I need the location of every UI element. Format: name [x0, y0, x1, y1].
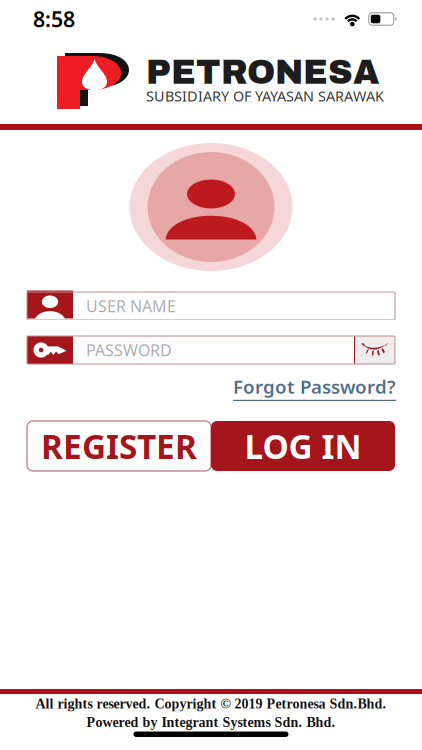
staticText: Powered by Integrant Systems Sdn. Bhd.: [86, 714, 335, 730]
staticText: PASSWORD: [86, 339, 172, 361]
staticText: LOG IN: [244, 424, 361, 468]
staticText: SUBSIDIARY OF YAYASAN SARAWAK: [146, 86, 384, 106]
button[interactable]: Forgot Password?: [233, 374, 396, 401]
staticText: PETRONESA: [146, 54, 379, 91]
staticText: USER NAME: [86, 295, 176, 317]
button[interactable]: REGISTER: [27, 421, 211, 471]
staticText: REGISTER: [41, 424, 197, 468]
staticText: 8:58: [33, 5, 75, 33]
staticText: Forgot Password?: [233, 374, 396, 399]
staticText: All rights reserved. Copyright © 2019 Pe…: [35, 696, 386, 711]
button[interactable]: LOG IN: [211, 421, 395, 471]
button[interactable]: Show password: [354, 336, 395, 364]
